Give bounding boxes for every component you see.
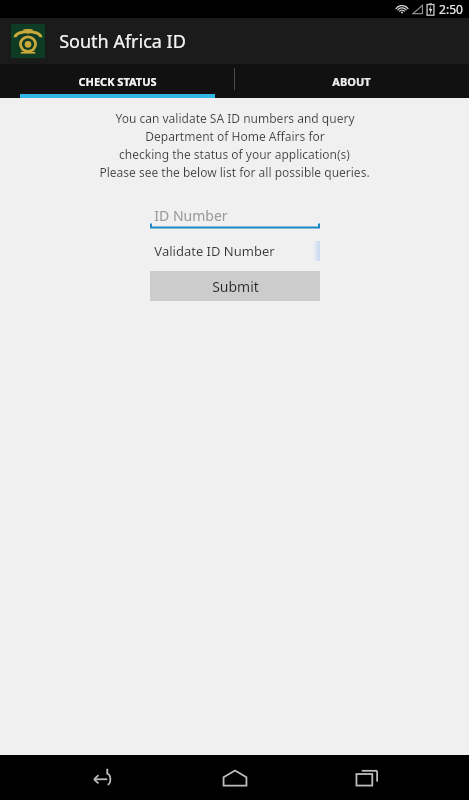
button[interactable]: Validate ID Number: [150, 239, 320, 263]
button[interactable]: Recent apps: [337, 755, 397, 800]
button[interactable]: App icon: [11, 24, 45, 58]
staticText: Submit: [212, 277, 259, 296]
button[interactable]: Submit: [150, 271, 320, 301]
staticText: 2:50: [439, 1, 463, 17]
staticText: South Africa ID: [59, 29, 186, 54]
button[interactable]: Back: [72, 755, 132, 800]
staticText: You can validate SA ID numbers and query: [115, 110, 355, 126]
staticText: ABOUT: [332, 74, 371, 89]
button[interactable]: ABOUT: [234, 64, 469, 98]
staticText: Validate ID Number: [154, 242, 275, 260]
button[interactable]: Home: [205, 755, 265, 800]
staticText: Department of Home Affairs for: [145, 128, 325, 144]
staticText: checking the status of your application(…: [119, 146, 350, 162]
button[interactable]: CHECK STATUS: [0, 64, 234, 98]
staticText: ID Number: [154, 206, 228, 225]
staticText: CHECK STATUS: [78, 74, 157, 89]
staticText: Please see the below list for all possib…: [99, 164, 370, 180]
button[interactable]: ID Number: [150, 201, 320, 229]
